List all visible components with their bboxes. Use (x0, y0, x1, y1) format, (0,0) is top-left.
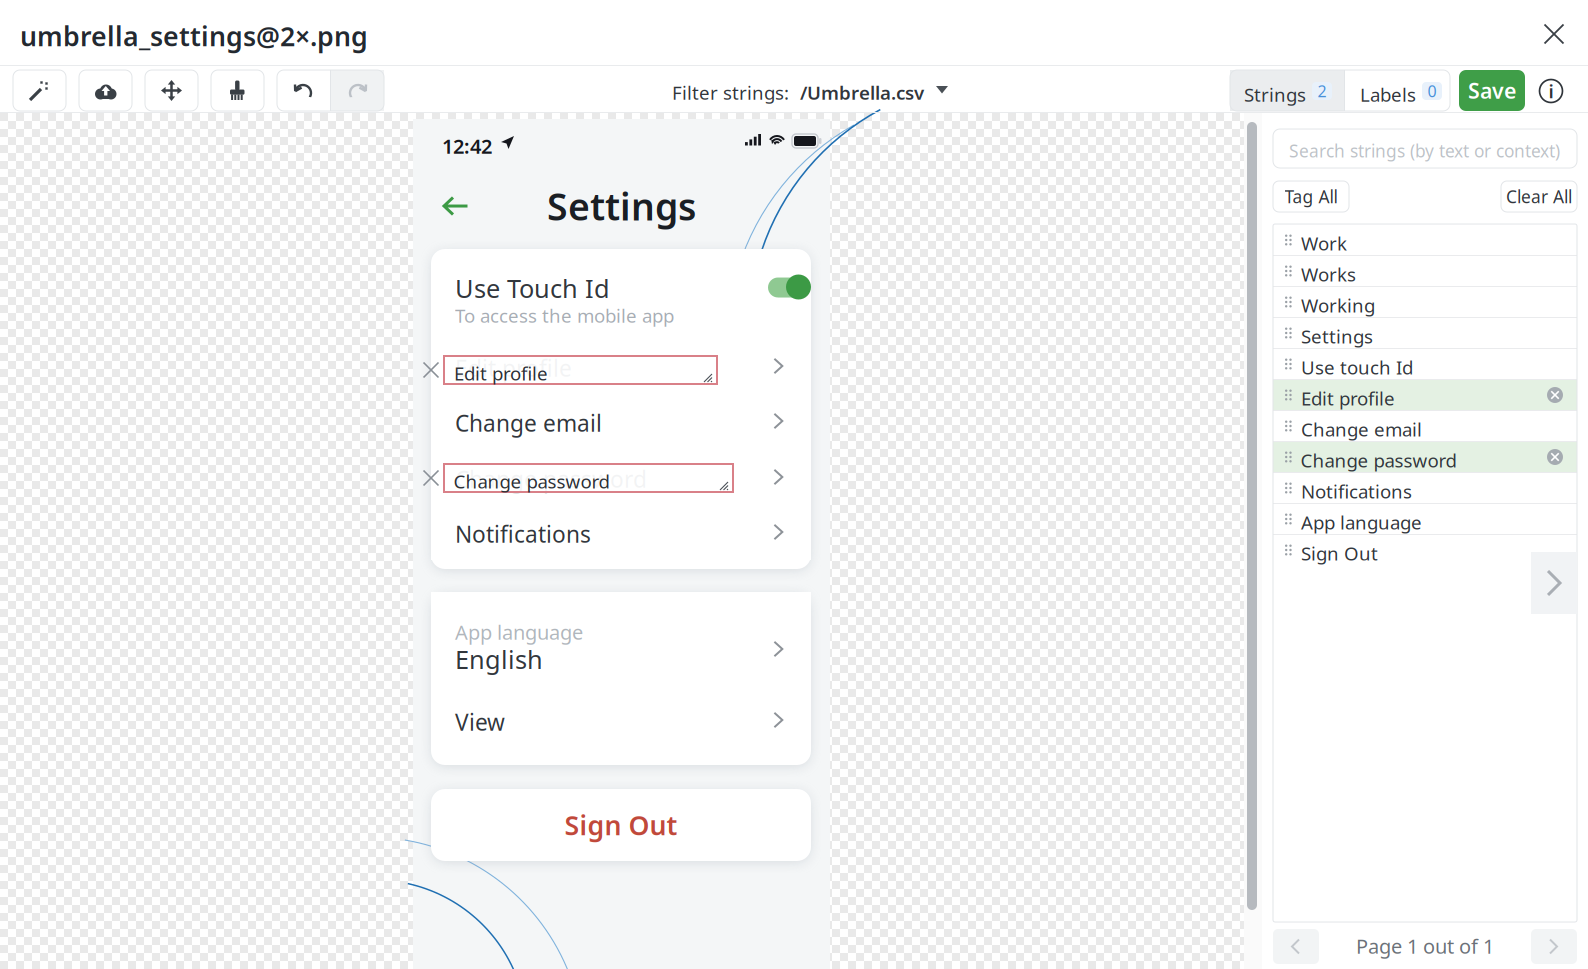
staticText: View (455, 707, 505, 737)
staticText: Change password (455, 464, 647, 494)
button[interactable]: Remove Edit profile (421, 360, 441, 380)
staticText: Sign Out (1301, 541, 1378, 566)
staticText: Working (1301, 293, 1375, 318)
staticText: Save (1468, 76, 1516, 105)
button[interactable]: Close (1534, 14, 1574, 54)
button[interactable]: Clear All (1501, 181, 1577, 212)
button[interactable]: Undo (277, 70, 330, 111)
button[interactable]: Notifications (1273, 473, 1577, 503)
staticText: Edit profile (455, 353, 572, 383)
button[interactable]: Settings (1273, 318, 1577, 348)
button[interactable]: Works (1273, 256, 1577, 286)
staticText: 12:42 (442, 133, 492, 159)
button[interactable]: Back (433, 187, 479, 225)
staticText: Change email (1301, 417, 1422, 442)
button[interactable]: Sign Out (1273, 535, 1577, 565)
button[interactable]: Use touch Id (1273, 349, 1577, 379)
staticText: Edit profile (454, 361, 548, 386)
button[interactable]: Clean (211, 70, 264, 111)
staticText: 0 (1427, 80, 1436, 102)
staticText: Works (1301, 262, 1356, 287)
button[interactable]: View (431, 692, 811, 748)
staticText: Change password (1300, 448, 1456, 473)
button[interactable]: Work (1273, 225, 1577, 255)
staticText: App language (455, 619, 583, 645)
button[interactable]: Working (1273, 287, 1577, 317)
button[interactable]: App language (431, 592, 811, 696)
button[interactable]: Edit profile (1273, 380, 1577, 410)
button[interactable]: Tag All (1273, 181, 1349, 212)
button[interactable]: Expand panel (1531, 552, 1577, 614)
button[interactable]: Upload (79, 70, 132, 111)
staticText: Notifications (1301, 479, 1412, 504)
staticText: Page 1 out of 1 (1356, 933, 1494, 959)
button[interactable]: Info (1538, 78, 1564, 104)
button[interactable]: Save (1459, 70, 1525, 111)
staticText: App language (1301, 510, 1422, 535)
button[interactable]: Search strings (by text or context) (1273, 129, 1577, 168)
button[interactable]: Remove Change password (421, 468, 441, 488)
button[interactable]: Change password (431, 449, 811, 505)
staticText: Search strings (by text or context) (1289, 139, 1560, 162)
button[interactable]: Change password (1273, 442, 1577, 472)
staticText: Settings (1301, 324, 1373, 349)
staticText: Work (1301, 231, 1347, 256)
button[interactable]: /Umbrella.csv (800, 74, 926, 108)
staticText: To access the mobile app (455, 303, 674, 328)
staticText: Edit profile (1301, 386, 1395, 411)
button[interactable]: Untag Edit profile (1547, 387, 1563, 403)
staticText: English (455, 642, 543, 676)
button[interactable]: Redo (331, 70, 384, 111)
button[interactable]: Sign Out (431, 789, 811, 861)
staticText: Change email (455, 408, 602, 438)
button[interactable]: Move (145, 70, 198, 111)
button[interactable]: Previous page (1273, 929, 1319, 964)
staticText: Sign Out (564, 807, 677, 843)
button[interactable]: Choose file (936, 86, 949, 95)
button[interactable]: App language (1273, 504, 1577, 534)
staticText: Use Touch Id (455, 271, 610, 305)
staticText: Settings (547, 181, 696, 231)
button[interactable]: Magic wand (13, 70, 66, 111)
button[interactable]: Next page (1531, 929, 1577, 964)
staticText: i (1548, 79, 1553, 103)
button[interactable]: Untag Change password (1547, 449, 1563, 465)
staticText: /Umbrella.csv (800, 80, 924, 105)
staticText: 2 (1317, 80, 1326, 102)
button[interactable]: Edit profile (431, 338, 811, 394)
staticText: Filter strings: (672, 80, 789, 105)
button[interactable]: Change email (1273, 411, 1577, 441)
staticText: Clear All (1506, 185, 1572, 208)
button[interactable]: Change email (431, 393, 811, 449)
staticText: Notifications (455, 519, 591, 549)
staticText: Tag All (1284, 185, 1337, 208)
button[interactable]: Strings (1230, 70, 1344, 111)
staticText: umbrella_settings@2×.png (20, 18, 368, 54)
staticText: Use touch Id (1301, 355, 1413, 380)
staticText: Strings (1244, 82, 1306, 107)
button[interactable]: Use Touch Id toggle (768, 274, 811, 301)
staticText: Labels (1360, 82, 1416, 107)
staticText: Change password (453, 469, 609, 494)
button[interactable]: Labels (1345, 70, 1450, 111)
button[interactable]: Notifications (431, 504, 811, 560)
